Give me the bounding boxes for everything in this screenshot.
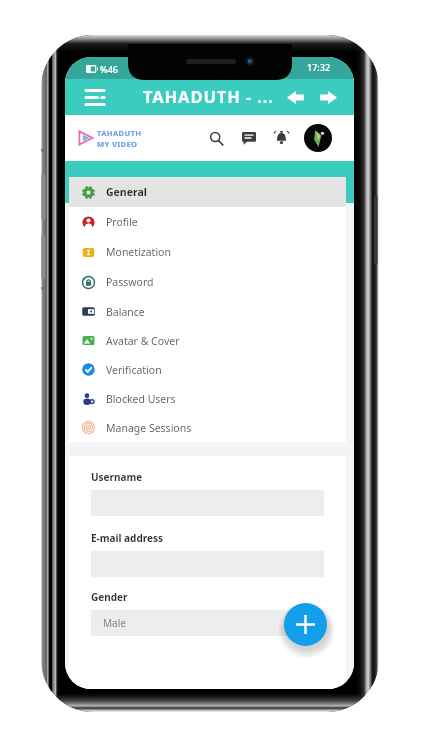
staticText: Manage Sessions [106,421,192,435]
button[interactable]: Manage Sessions [69,413,346,442]
staticText: TAHADUTH [97,128,142,138]
button[interactable]: Monetization [69,237,346,267]
staticText: Password [106,275,154,289]
button[interactable]: Forward [316,85,340,109]
button[interactable]: Blocked Users [69,384,346,413]
staticText: Profile [106,215,138,229]
button[interactable]: Back [283,85,307,109]
button[interactable]: General [69,177,346,207]
button[interactable]: Add [284,603,327,646]
button[interactable]: Notifications [268,125,294,151]
staticText: %46 [100,63,118,75]
staticText: Male [103,616,126,630]
staticText: Username [91,470,143,484]
button[interactable]: Menu [80,83,109,112]
staticText: 17:32 [307,61,331,73]
button[interactable]: Search [203,125,229,151]
staticText: Blocked Users [106,392,176,406]
staticText: General [106,185,147,199]
button[interactable]: Verification [69,355,346,384]
button[interactable]: Avatar & Cover [69,326,346,355]
button[interactable]: TAHADUTH [78,115,142,161]
staticText: MY VIDEO [97,139,138,149]
button[interactable]: Messages [236,125,262,151]
staticText: Gender [91,590,128,604]
staticText: Avatar & Cover [106,334,180,348]
button[interactable]: Profile [69,207,346,237]
staticText: Verification [106,363,162,377]
staticText: TAHADUTH - ... [143,85,274,107]
button[interactable]: Account [304,124,332,152]
button[interactable]: Balance [69,297,346,326]
button[interactable]: Password [69,267,346,297]
staticText: Balance [106,305,145,319]
button[interactable]: Male [91,610,324,636]
staticText: E-mail address [91,531,164,545]
staticText: Monetization [106,245,171,259]
